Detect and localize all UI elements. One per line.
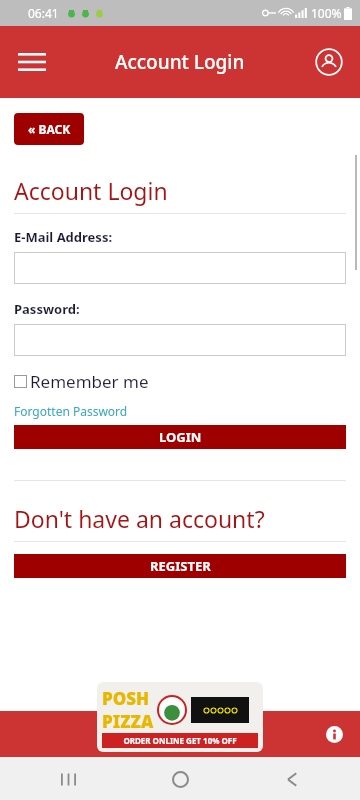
- staticText: 100%: [311, 5, 342, 21]
- button[interactable]: « BACK: [14, 113, 84, 145]
- button[interactable]: Account: [311, 44, 347, 80]
- button[interactable]: Remember me: [14, 370, 149, 393]
- button[interactable]: Back: [272, 759, 312, 799]
- staticText: 06:41: [28, 5, 59, 21]
- button[interactable]: Recents: [48, 759, 88, 799]
- button[interactable]: LOGIN: [14, 425, 346, 449]
- staticText: « BACK: [28, 121, 71, 137]
- staticText: E-Mail Address:: [14, 228, 113, 246]
- staticText: Password:: [14, 300, 80, 318]
- staticText: PIZZA: [102, 710, 154, 733]
- button[interactable]: Menu: [10, 40, 54, 84]
- staticText: REGISTER: [150, 557, 211, 575]
- staticText: LOGIN: [159, 428, 202, 446]
- staticText: ORDER ONLINE GET 10% OFF: [123, 735, 237, 746]
- staticText: Don't have an account?: [14, 503, 265, 534]
- button[interactable]: [14, 324, 346, 356]
- button[interactable]: POSH: [97, 682, 263, 752]
- button[interactable]: [14, 252, 346, 284]
- button[interactable]: Forgotten Password: [14, 403, 128, 419]
- button[interactable]: Home: [160, 759, 200, 799]
- staticText: Remember me: [30, 370, 149, 393]
- staticText: Account Login: [115, 49, 245, 75]
- button[interactable]: REGISTER: [14, 554, 346, 578]
- button[interactable]: Info: [322, 722, 346, 746]
- staticText: Forgotten Password: [14, 403, 128, 419]
- staticText: POSH: [102, 687, 150, 710]
- staticText: Account Login: [14, 175, 168, 206]
